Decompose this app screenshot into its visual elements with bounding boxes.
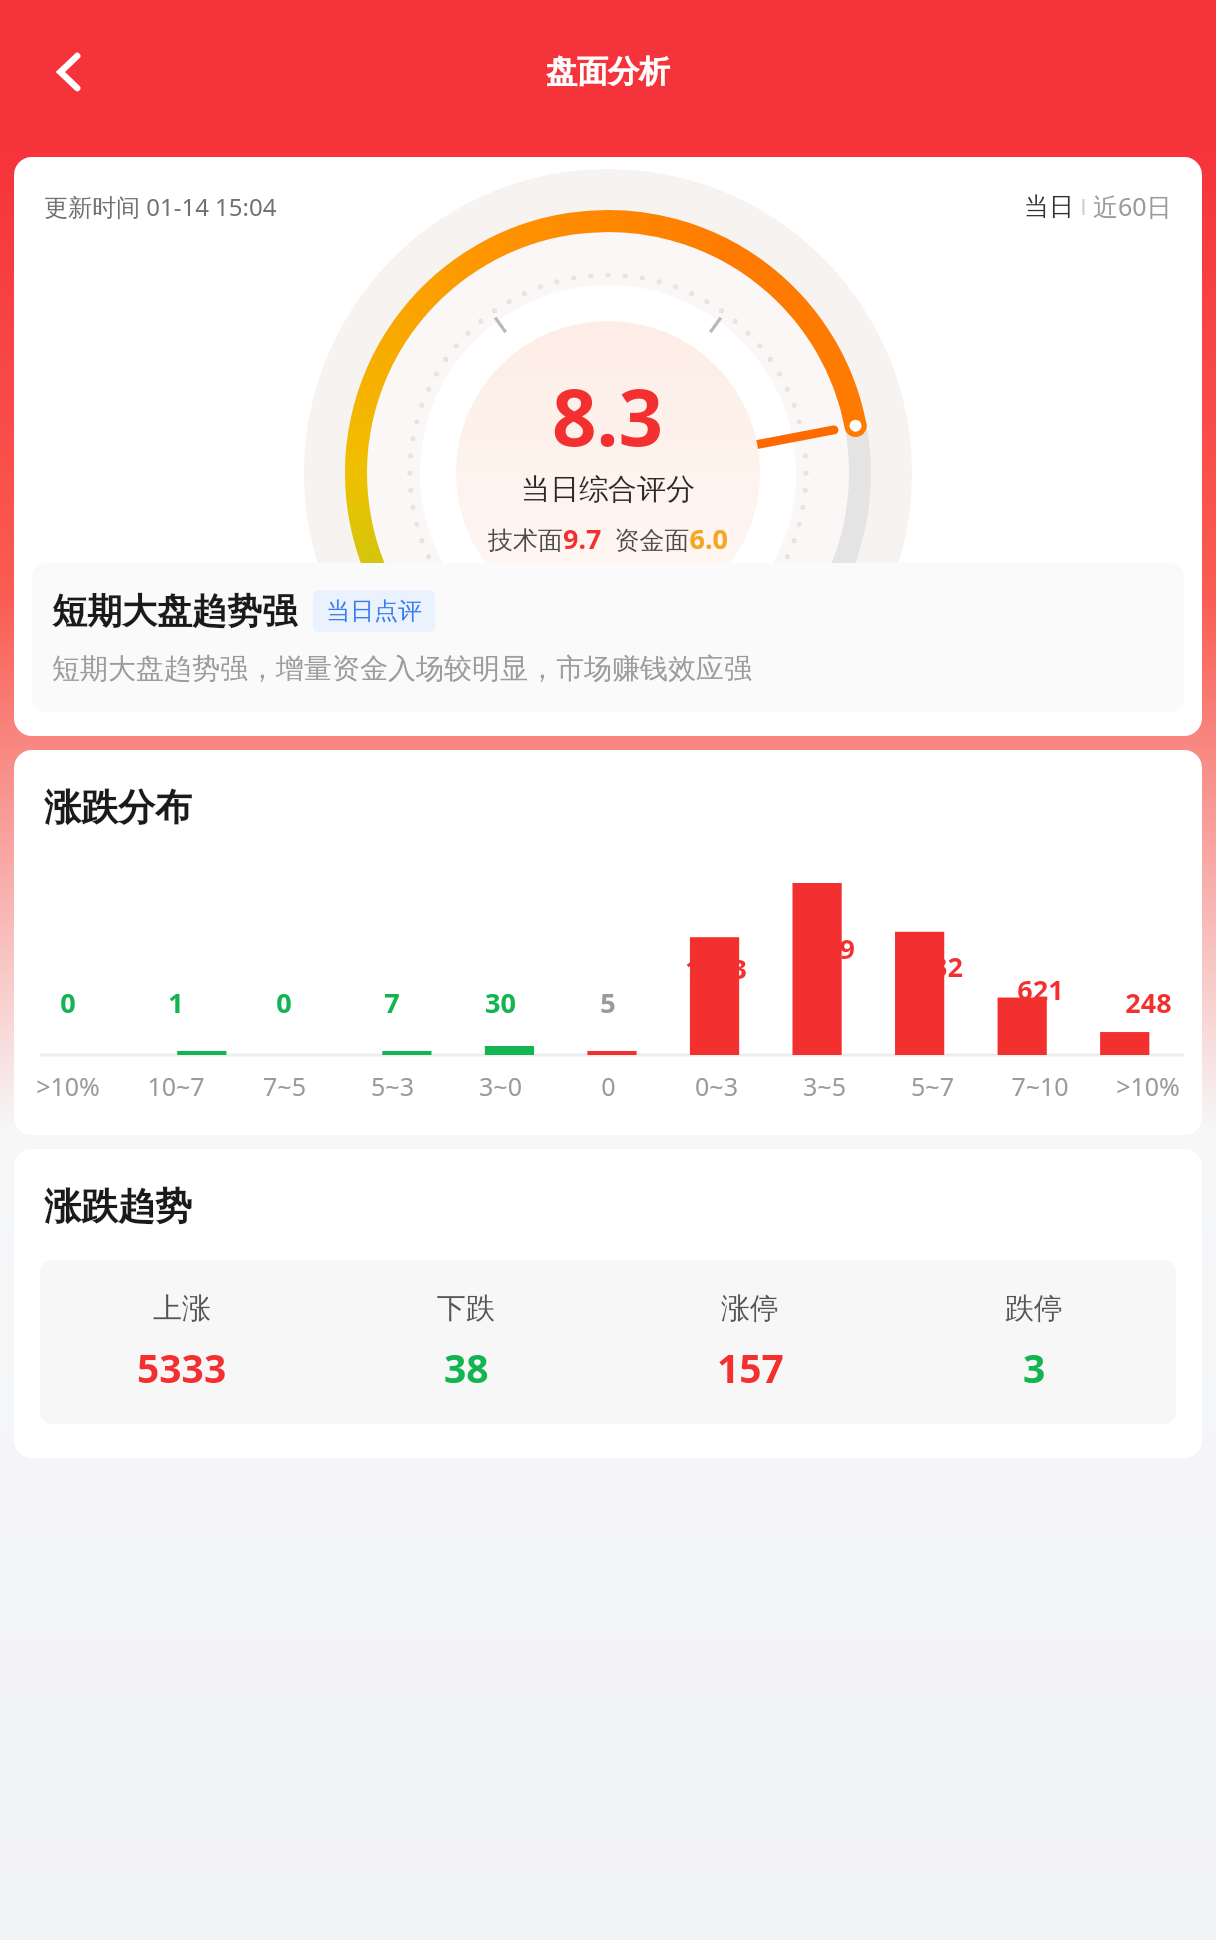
staticText: 5~7 [911, 1069, 954, 1103]
staticText: 1 [168, 984, 184, 1021]
staticText: >10% [1116, 1069, 1180, 1103]
staticText: 5333 [137, 1341, 227, 1394]
staticText: 621 [1017, 971, 1064, 1008]
staticText: 3 [1023, 1341, 1046, 1394]
staticText: 1332 [901, 948, 963, 985]
staticText: 当日点评 [326, 596, 422, 626]
staticText: 248 [1125, 984, 1172, 1021]
button[interactable]: 上涨 [40, 1290, 324, 1394]
staticText: 157 [717, 1341, 784, 1394]
staticText: 7 [384, 984, 400, 1021]
staticText: 3~5 [803, 1069, 846, 1103]
staticText: 近60日 [1093, 189, 1172, 223]
staticText: 0 [276, 984, 292, 1021]
staticText: 38 [444, 1341, 489, 1394]
button[interactable]: 当日点评 [313, 590, 435, 632]
button[interactable]: 跌停 [892, 1290, 1176, 1394]
button[interactable]: Back [34, 36, 106, 108]
staticText: 5~3 [371, 1069, 414, 1103]
staticText: 0 [601, 1069, 616, 1103]
staticText: 盘面分析 [546, 52, 670, 91]
button[interactable]: 近60日 [1093, 189, 1172, 223]
staticText: 8.3 [552, 363, 664, 469]
staticText: 更新时间 01-14 15:04 [44, 190, 277, 223]
staticText: 7~5 [263, 1069, 306, 1103]
staticText: 1859 [793, 930, 855, 967]
staticText: 下跌 [437, 1290, 495, 1327]
staticText: 30 [485, 984, 516, 1021]
staticText: 0 [60, 984, 76, 1021]
staticText: 涨停 [721, 1290, 779, 1327]
staticText: 当日 [1024, 191, 1074, 222]
staticText: 上涨 [153, 1290, 211, 1327]
staticText: 短期大盘趋势强 [52, 589, 297, 633]
staticText: 10~7 [147, 1069, 205, 1103]
staticText: 涨跌趋势 [44, 1183, 192, 1230]
button[interactable]: 当日 [1024, 191, 1074, 222]
staticText: 短期大盘趋势强，增量资金入场较明显，市场赚钱效应强 [52, 651, 752, 686]
staticText: ǀ [1074, 191, 1093, 221]
staticText: 3~0 [479, 1069, 522, 1103]
staticText: 5 [600, 984, 616, 1021]
staticText: 0~3 [695, 1069, 738, 1103]
staticText: 涨跌分布 [44, 784, 192, 831]
staticText: 跌停 [1005, 1290, 1063, 1327]
button[interactable]: 涨停 [608, 1290, 892, 1394]
staticText: 7~10 [1011, 1069, 1069, 1103]
staticText: >10% [36, 1069, 100, 1103]
staticText: 技术面9.7 资金面6.0 [488, 520, 728, 557]
staticText: 1273 [685, 950, 747, 987]
button[interactable]: 下跌 [324, 1290, 608, 1394]
staticText: 当日综合评分 [521, 471, 695, 508]
